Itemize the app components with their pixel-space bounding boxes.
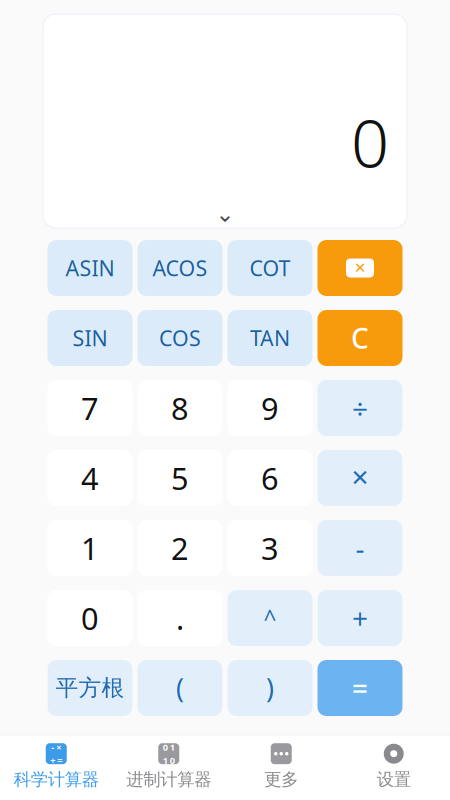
staticText: 8 — [171, 388, 189, 428]
staticText: C — [351, 319, 369, 357]
staticText: 1 0 — [163, 754, 175, 767]
button[interactable]: = — [317, 660, 402, 716]
staticText: ASIN — [65, 254, 114, 282]
staticText: 科学计算器 — [14, 769, 99, 790]
staticText: 3 — [261, 528, 279, 568]
button[interactable]: - — [317, 520, 402, 576]
staticText: ( — [176, 670, 184, 706]
staticText: + = — [50, 754, 62, 767]
staticText: ✕ — [350, 465, 369, 491]
staticText: = — [352, 669, 368, 707]
button[interactable]: 5 — [137, 450, 222, 506]
button[interactable]: ✕ — [317, 450, 402, 506]
staticText: 7 — [81, 388, 99, 428]
button[interactable]: 9 — [227, 380, 312, 436]
button[interactable]: Backspace — [317, 240, 402, 296]
staticText: + — [352, 599, 368, 637]
staticText: 4 — [81, 458, 99, 498]
staticText: ⌄ — [215, 201, 234, 227]
button[interactable]: ( — [137, 660, 222, 716]
staticText: COS — [159, 324, 201, 352]
staticText: 平方根 — [55, 674, 124, 702]
button[interactable]: . — [137, 590, 222, 646]
staticText: 2 — [171, 528, 189, 568]
button[interactable]: 6 — [227, 450, 312, 506]
staticText: 1 — [81, 528, 99, 568]
staticText: 进制计算器 — [126, 769, 211, 790]
button[interactable]: 0 — [47, 590, 132, 646]
button[interactable]: COS — [137, 310, 222, 366]
button[interactable]: 设置 — [337, 743, 450, 790]
button[interactable]: ACOS — [137, 240, 222, 296]
staticText: 设置 — [377, 769, 411, 790]
button[interactable]: Clear — [317, 310, 402, 366]
staticText: SIN — [72, 324, 107, 352]
staticText: . — [176, 598, 184, 638]
button[interactable]: ) — [227, 660, 312, 716]
staticText: 9 — [261, 388, 279, 428]
button[interactable]: ASIN — [47, 240, 132, 296]
button[interactable]: 3 — [227, 520, 312, 576]
staticText: TAN — [250, 324, 290, 352]
button[interactable]: COT — [227, 240, 312, 296]
staticText: ✕ — [354, 260, 366, 276]
staticText: - × — [51, 741, 61, 753]
button[interactable]: ^ — [227, 590, 312, 646]
button[interactable]: TAN — [227, 310, 312, 366]
button[interactable]: Collapse — [203, 204, 247, 224]
button[interactable]: 8 — [137, 380, 222, 436]
staticText: 0 — [351, 97, 389, 186]
staticText: ÷ — [352, 389, 368, 427]
button[interactable]: ÷ — [317, 380, 402, 436]
button[interactable]: SIN — [47, 310, 132, 366]
staticText: - — [355, 529, 364, 567]
button[interactable]: 0 1 — [112, 743, 225, 790]
button[interactable]: - × — [0, 743, 112, 790]
staticText: ^ — [263, 603, 276, 633]
button[interactable]: + — [317, 590, 402, 646]
staticText: 更多 — [264, 769, 298, 790]
button[interactable]: 平方根 — [47, 660, 132, 716]
button[interactable]: 4 — [47, 450, 132, 506]
staticText: ) — [266, 670, 274, 706]
staticText: 6 — [261, 458, 279, 498]
staticText: COT — [249, 254, 290, 282]
button[interactable]: 7 — [47, 380, 132, 436]
button[interactable]: 2 — [137, 520, 222, 576]
staticText: ACOS — [152, 254, 207, 282]
staticText: 5 — [171, 458, 189, 498]
staticText: 0 1 — [163, 741, 175, 753]
button[interactable]: 更多 — [225, 743, 337, 790]
staticText: 0 — [81, 598, 99, 638]
button[interactable]: 1 — [47, 520, 132, 576]
